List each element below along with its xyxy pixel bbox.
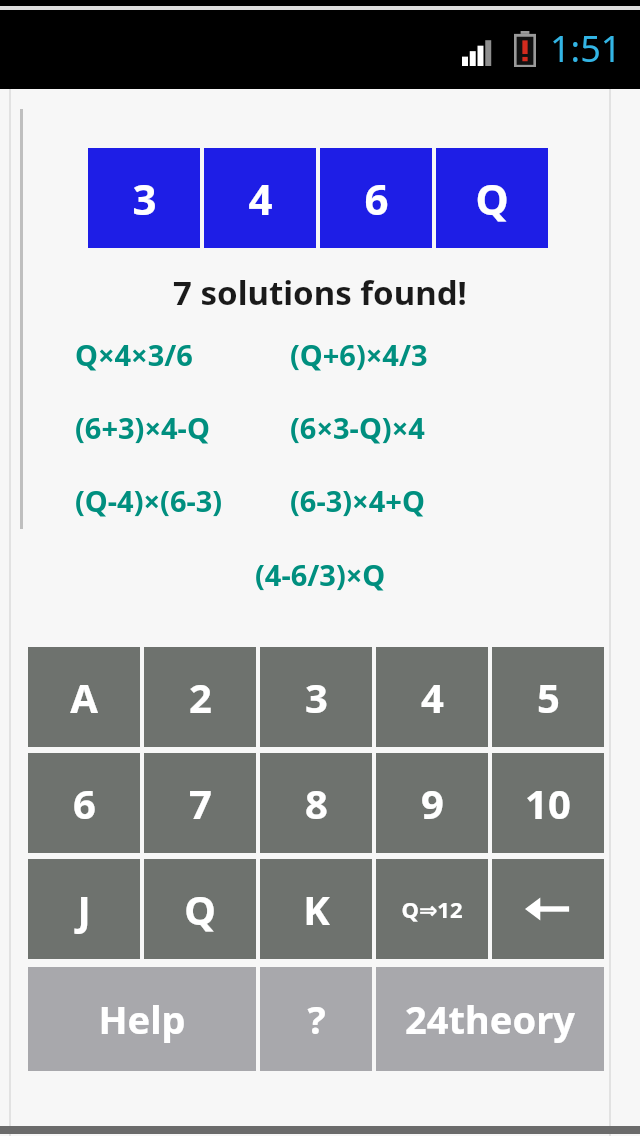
staticText: (4-6/3)×Q <box>255 555 386 594</box>
button[interactable]: 7 <box>144 753 256 853</box>
button[interactable]: 10 <box>492 753 604 853</box>
button[interactable]: 6 <box>28 753 140 853</box>
staticText: Q <box>475 170 509 227</box>
staticText: Help <box>98 993 186 1045</box>
staticText: A <box>70 670 98 724</box>
button[interactable]: 3 <box>88 148 200 248</box>
staticText: (6×3-Q)×4 <box>290 408 425 447</box>
staticText: 4 <box>421 670 444 724</box>
staticText: (6+3)×4-Q <box>75 408 210 447</box>
button[interactable]: Help <box>28 967 256 1071</box>
button[interactable]: 9 <box>376 753 488 853</box>
staticText: 1:51 <box>550 24 622 73</box>
staticText: 10 <box>525 776 571 830</box>
staticText: 2 <box>189 670 212 724</box>
button[interactable]: 2 <box>144 647 256 747</box>
staticText: (Q+6)×4/3 <box>290 335 428 374</box>
staticText: Q⇒12 <box>401 894 463 924</box>
button[interactable]: J <box>28 859 140 959</box>
button[interactable]: 6 <box>320 148 432 248</box>
button[interactable]: 24theory <box>376 967 604 1071</box>
button[interactable]: Q <box>144 859 256 959</box>
staticText: 24theory <box>405 993 575 1045</box>
staticText: 6 <box>364 170 389 227</box>
staticText: (Q-4)×(6-3) <box>75 481 223 520</box>
button[interactable]: 4 <box>376 647 488 747</box>
staticText: 3 <box>132 170 157 227</box>
staticText: 6 <box>73 776 96 830</box>
staticText: (6-3)×4+Q <box>290 481 425 520</box>
staticText: Q×4×3/6 <box>75 335 193 374</box>
button[interactable]: K <box>260 859 372 959</box>
button[interactable]: 8 <box>260 753 372 853</box>
button[interactable]: ? <box>260 967 372 1071</box>
button[interactable]: 3 <box>260 647 372 747</box>
staticText: 3 <box>305 670 328 724</box>
button[interactable]: 4 <box>204 148 316 248</box>
staticText: 8 <box>305 776 328 830</box>
staticText: 9 <box>421 776 444 830</box>
staticText: 4 <box>248 170 273 227</box>
staticText: 5 <box>537 670 560 724</box>
button[interactable]: Q <box>436 148 548 248</box>
staticText: 7 solutions found! <box>173 270 467 315</box>
button[interactable]: 5 <box>492 647 604 747</box>
button[interactable]: Backspace <box>492 859 604 959</box>
staticText: J <box>77 882 91 936</box>
button[interactable]: A <box>28 647 140 747</box>
staticText: K <box>303 882 330 936</box>
staticText: Q <box>184 882 216 936</box>
staticText: 7 <box>189 776 212 830</box>
staticText: ? <box>307 993 326 1045</box>
button[interactable]: Q⇒12 <box>376 859 488 959</box>
